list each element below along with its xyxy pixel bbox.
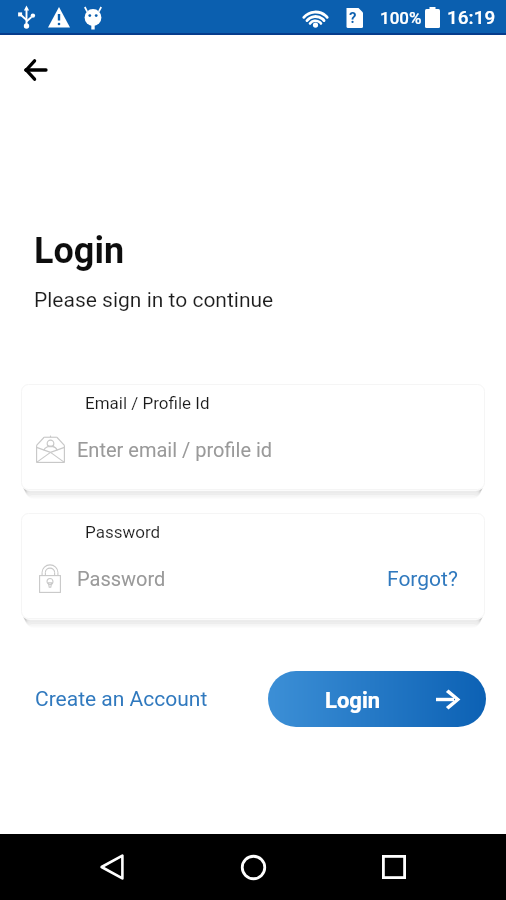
button[interactable]: Recents — [362, 844, 426, 890]
button[interactable]: Login — [268, 671, 486, 727]
staticText: Enter email / profile id — [77, 438, 273, 461]
staticText: Please sign in to continue — [34, 288, 274, 313]
staticText: 16:19 — [447, 6, 496, 28]
staticText: 100% — [380, 8, 422, 28]
staticText: Password — [85, 522, 161, 542]
button[interactable]: Back — [80, 844, 144, 890]
button[interactable]: Home — [221, 844, 285, 890]
button[interactable]: Password — [21, 513, 485, 626]
button[interactable]: Email / Profile Id — [21, 384, 485, 497]
button[interactable]: Back — [13, 48, 57, 92]
staticText: Password — [77, 567, 166, 590]
button[interactable]: Create an Account — [26, 678, 217, 721]
staticText: Login — [34, 230, 125, 272]
staticText: Login — [325, 688, 381, 714]
button[interactable]: Forgot? — [377, 558, 468, 601]
staticText: ? — [349, 9, 357, 27]
staticText: Email / Profile Id — [85, 393, 210, 413]
staticText: Create an Account — [35, 687, 208, 712]
staticText: Forgot? — [387, 567, 458, 592]
